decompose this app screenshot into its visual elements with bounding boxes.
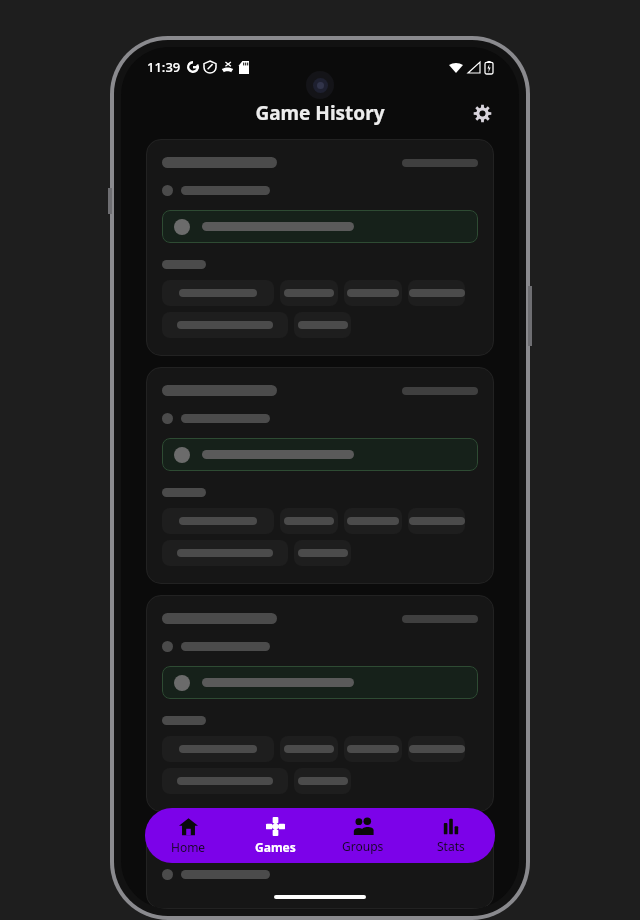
button[interactable] bbox=[408, 736, 465, 762]
button[interactable]: Games bbox=[232, 810, 319, 862]
button[interactable] bbox=[294, 540, 351, 566]
button[interactable] bbox=[146, 823, 494, 909]
button[interactable] bbox=[162, 540, 288, 566]
button[interactable] bbox=[294, 768, 351, 794]
button[interactable] bbox=[408, 508, 465, 534]
button[interactable]: Stats bbox=[407, 810, 495, 861]
staticText: Game History bbox=[255, 100, 385, 126]
button[interactable] bbox=[280, 736, 338, 762]
button[interactable] bbox=[162, 736, 274, 762]
button[interactable] bbox=[146, 367, 494, 584]
button[interactable]: Settings bbox=[465, 96, 499, 130]
button[interactable] bbox=[146, 595, 494, 812]
button[interactable] bbox=[344, 736, 402, 762]
button[interactable] bbox=[162, 312, 288, 338]
button[interactable] bbox=[408, 280, 465, 306]
staticText: 11:39 bbox=[147, 58, 181, 76]
staticText: Games bbox=[255, 839, 296, 855]
button[interactable] bbox=[294, 312, 351, 338]
button[interactable]: Home bbox=[145, 810, 232, 862]
staticText: Groups bbox=[342, 838, 384, 854]
button[interactable] bbox=[344, 280, 402, 306]
button[interactable]: Groups bbox=[319, 810, 407, 861]
button[interactable] bbox=[162, 508, 274, 534]
button[interactable] bbox=[280, 508, 338, 534]
staticText: Stats bbox=[437, 838, 465, 854]
button[interactable] bbox=[146, 139, 494, 356]
button[interactable] bbox=[162, 280, 274, 306]
staticText: Home bbox=[171, 839, 206, 855]
button[interactable] bbox=[162, 768, 288, 794]
button[interactable] bbox=[280, 280, 338, 306]
button[interactable] bbox=[344, 508, 402, 534]
